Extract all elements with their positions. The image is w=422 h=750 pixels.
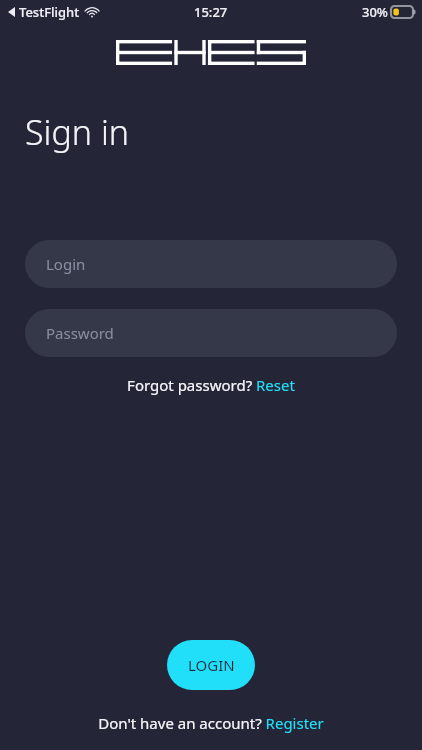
- staticText: 15:27: [194, 3, 228, 21]
- staticText: Login: [46, 254, 86, 274]
- staticText: LOGIN: [188, 655, 235, 675]
- button[interactable]: Password: [25, 309, 397, 357]
- staticText: Password: [46, 323, 114, 343]
- button[interactable]: LOGIN: [167, 640, 255, 690]
- staticText: 30%: [362, 3, 388, 21]
- staticText: TestFlight: [19, 3, 80, 21]
- staticText: Sign in: [25, 109, 130, 155]
- button[interactable]: Forgot password? Reset: [119, 371, 303, 399]
- button[interactable]: Login: [25, 240, 397, 288]
- other: EHES logo: [116, 40, 306, 65]
- staticText: Don't have an account? Register: [98, 713, 324, 733]
- button[interactable]: Don't have an account? Register: [90, 710, 332, 736]
- staticText: Forgot password? Reset: [127, 375, 295, 395]
